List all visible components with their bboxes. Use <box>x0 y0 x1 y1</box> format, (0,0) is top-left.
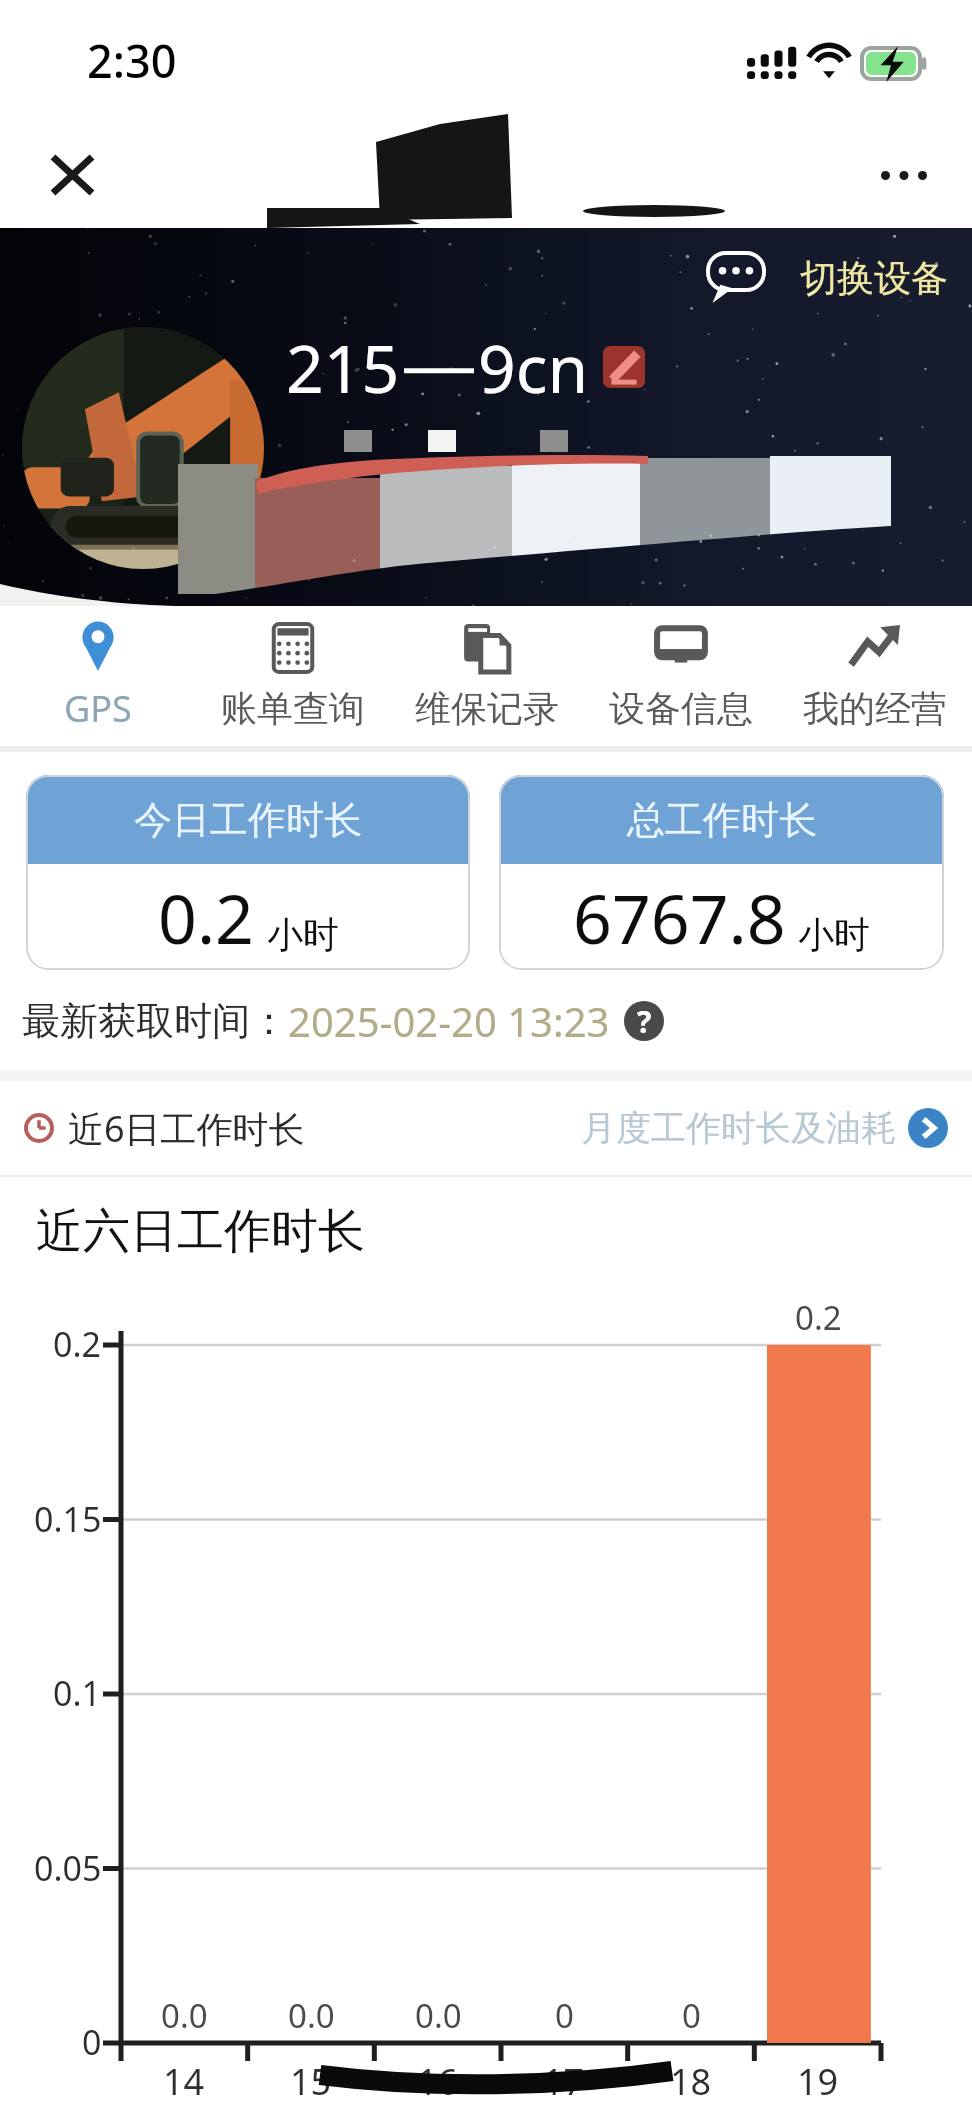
staticText: 14 <box>163 2057 205 2104</box>
staticText: 最新获取时间： <box>22 997 288 1045</box>
button[interactable]: 总工作时长 <box>499 775 944 970</box>
staticText: 0.0 <box>415 1993 462 2038</box>
button[interactable]: 切换设备 <box>708 253 948 303</box>
staticText: 小时 <box>798 912 870 957</box>
staticText: 18 <box>670 2057 712 2104</box>
staticText: 账单查询 <box>221 686 365 731</box>
button[interactable]: GPS <box>0 620 195 733</box>
staticText: 小时 <box>267 912 339 957</box>
staticText: 6767.8 <box>573 871 786 964</box>
staticText: 0.1 <box>53 1670 102 1716</box>
staticText: GPS <box>64 684 132 733</box>
button[interactable]: Help <box>624 1001 664 1041</box>
staticText: 总工作时长 <box>627 796 817 844</box>
staticText: 0 <box>82 2019 102 2065</box>
staticText: 19 <box>797 2057 839 2104</box>
staticText: 设备信息 <box>609 686 753 731</box>
staticText: 0.0 <box>288 1993 335 2038</box>
button[interactable] <box>22 327 264 569</box>
staticText: 9cn <box>478 322 589 412</box>
staticText: 2:30 <box>87 30 177 91</box>
button[interactable]: 今日工作时长 <box>26 775 470 970</box>
staticText: 15 <box>290 2057 332 2104</box>
staticText: 0.15 <box>34 1496 102 1542</box>
button[interactable]: Edit device name <box>601 344 647 390</box>
staticText: 215 <box>286 322 400 412</box>
button[interactable]: More options <box>862 133 946 217</box>
staticText: 0.2 <box>158 871 255 964</box>
staticText: 我的经营 <box>803 686 947 731</box>
staticText: 16 <box>417 2057 459 2104</box>
staticText: ? <box>637 1001 652 1041</box>
button[interactable]: 我的经营 <box>778 622 972 731</box>
staticText: 17 <box>543 2057 585 2104</box>
staticText: 近6日工作时长 <box>68 1104 305 1153</box>
staticText: 0.05 <box>34 1845 102 1891</box>
button[interactable]: 设备信息 <box>584 622 778 731</box>
button[interactable]: 账单查询 <box>195 622 390 731</box>
staticText: 2025-02-20 13:23 <box>288 994 610 1048</box>
staticText: 今日工作时长 <box>134 796 362 844</box>
staticText: 0.2 <box>53 1321 102 1367</box>
button[interactable]: 月度工作时长及油耗 <box>581 1106 948 1150</box>
button[interactable]: Close <box>30 133 114 217</box>
staticText: 月度工作时长及油耗 <box>581 1106 896 1150</box>
button[interactable]: 维保记录 <box>390 622 584 731</box>
staticText: 维保记录 <box>415 686 559 731</box>
staticText: 切换设备 <box>800 255 948 302</box>
staticText: 0.0 <box>161 1993 208 2038</box>
staticText: 近六日工作时长 <box>36 1202 365 1261</box>
staticText: 0 <box>555 1993 574 2038</box>
staticText: 0.2 <box>795 1295 842 1340</box>
staticText: 0 <box>682 1993 701 2038</box>
